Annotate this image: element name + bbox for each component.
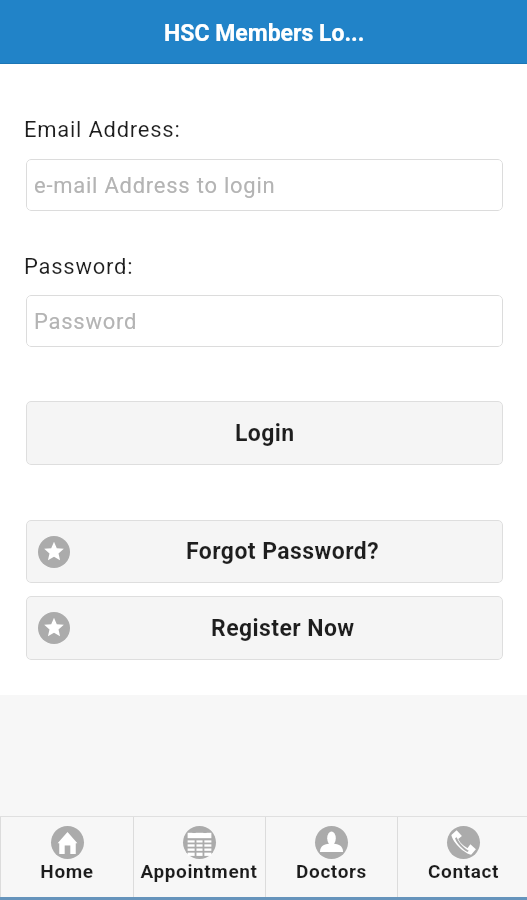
staticText: HSC Members Lo... xyxy=(164,20,365,47)
staticText: Forgot Password? xyxy=(186,538,380,565)
staticText: e-mail Address to login xyxy=(34,173,276,199)
button[interactable]: Login xyxy=(26,401,503,465)
staticText: Contact xyxy=(428,860,499,882)
button[interactable]: Appointment xyxy=(133,816,265,897)
button[interactable]: Home xyxy=(1,816,133,897)
button[interactable]: Password xyxy=(26,295,503,347)
staticText: Register Now xyxy=(211,615,355,642)
staticText: Login xyxy=(235,420,295,447)
staticText: Doctors xyxy=(296,860,367,882)
button[interactable]: Register Now xyxy=(26,596,503,660)
staticText: Password: xyxy=(24,254,134,280)
button[interactable]: Contact xyxy=(397,816,527,897)
staticText: Appointment xyxy=(140,860,258,882)
staticText: Home xyxy=(40,860,94,882)
button[interactable]: e-mail Address to login xyxy=(26,159,503,211)
staticText: Password xyxy=(34,309,138,335)
button[interactable]: Forgot Password? xyxy=(26,520,503,583)
button[interactable]: Doctors xyxy=(265,816,397,897)
staticText: Email Address: xyxy=(24,117,181,143)
